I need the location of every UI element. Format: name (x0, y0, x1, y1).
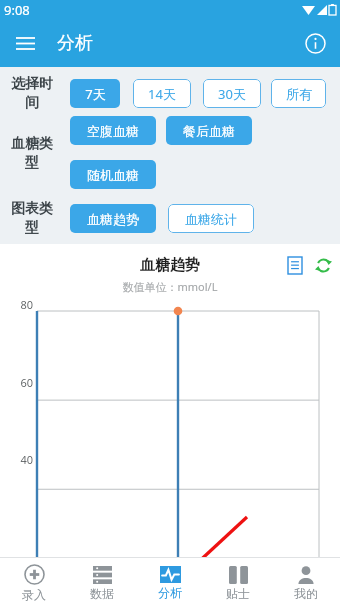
button[interactable]: 数据 (68, 558, 136, 608)
button[interactable]: Refresh (312, 254, 334, 276)
staticText: 30天 (218, 85, 246, 103)
button[interactable]: 随机血糖 (70, 160, 156, 189)
staticText: 血糖趋势 (87, 211, 139, 227)
staticText: 数据 (90, 586, 114, 601)
staticText: 空腹血糖 (87, 123, 139, 139)
button[interactable]: List (284, 254, 306, 276)
staticText: 血糖统计 (185, 211, 237, 227)
button[interactable]: Menu (7, 25, 43, 61)
staticText: 所有 (286, 86, 312, 102)
staticText: 分析 (158, 585, 182, 600)
staticText: 40 (0, 452, 33, 467)
staticText: 60 (0, 375, 33, 390)
staticText: 80 (0, 297, 33, 312)
staticText: 9:08 (4, 1, 30, 19)
button[interactable]: 血糖趋势 (70, 204, 156, 233)
staticText: 14天 (148, 85, 176, 103)
staticText: 血糖类 型 (11, 135, 53, 171)
button[interactable]: 我的 (272, 558, 340, 608)
staticText: 贴士 (226, 586, 250, 601)
staticText: 我的 (294, 586, 318, 601)
button[interactable]: Info (297, 25, 333, 61)
staticText: 餐后血糖 (183, 123, 235, 139)
button[interactable]: 分析 (136, 558, 204, 608)
staticText: 血糖趋势 (140, 256, 200, 275)
staticText: 图表类 型 (11, 200, 53, 236)
staticText: 分析 (57, 32, 93, 55)
button[interactable]: 录入 (0, 558, 68, 608)
button[interactable]: 血糖统计 (168, 204, 254, 233)
button[interactable]: 空腹血糖 (70, 116, 156, 145)
staticText: 7天 (85, 85, 106, 103)
staticText: 随机血糖 (87, 167, 139, 183)
button[interactable]: 30天 (203, 79, 261, 108)
button[interactable]: 餐后血糖 (166, 116, 252, 145)
staticText: 选择时 间 (11, 75, 53, 111)
staticText: 数值单位：mmol/L (0, 279, 340, 294)
button[interactable]: 14天 (133, 79, 191, 108)
button[interactable]: 所有 (271, 79, 326, 108)
button[interactable]: 7天 (70, 79, 120, 108)
staticText: 录入 (22, 587, 46, 602)
button[interactable]: 贴士 (204, 558, 272, 608)
